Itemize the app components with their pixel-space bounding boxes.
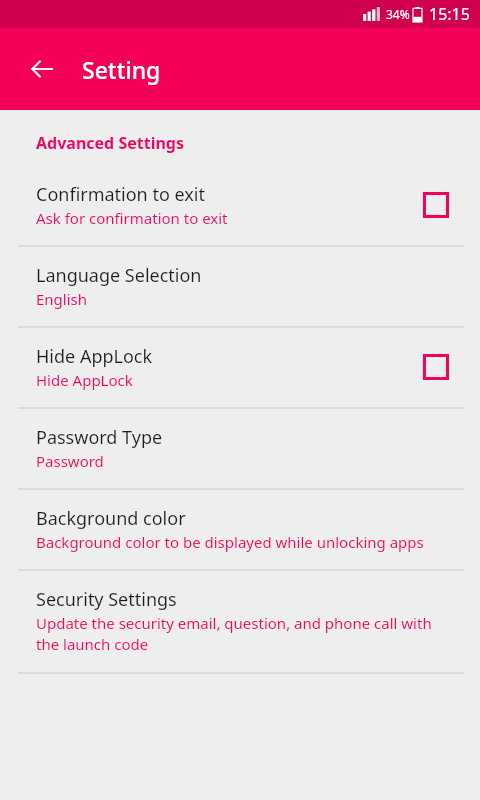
- staticText: English: [36, 289, 88, 309]
- staticText: Password Type: [36, 425, 163, 450]
- staticText: Hide AppLock: [36, 370, 133, 390]
- staticText: Confirmation to exit: [36, 182, 205, 207]
- staticText: Password: [36, 451, 104, 471]
- staticText: Security Settings: [36, 587, 177, 612]
- staticText: Advanced Settings: [36, 132, 184, 154]
- staticText: Language Selection: [36, 263, 202, 288]
- button[interactable]: Hide AppLock: [0, 328, 480, 407]
- button[interactable]: Toggle Hide AppLock: [416, 347, 456, 387]
- staticText: 15:15: [429, 3, 470, 25]
- button[interactable]: Confirmation to exit: [0, 166, 480, 245]
- button[interactable]: Language Selection: [0, 247, 480, 326]
- staticText: Ask for confirmation to exit: [36, 208, 228, 228]
- staticText: Setting: [82, 54, 161, 85]
- staticText: 34%: [386, 6, 410, 22]
- button[interactable]: Background color: [0, 490, 480, 569]
- staticText: Background color to be displayed while u…: [36, 532, 424, 552]
- staticText: Hide AppLock: [36, 344, 153, 369]
- staticText: Update the security email, question, and…: [36, 613, 456, 655]
- button[interactable]: Security Settings: [0, 571, 480, 672]
- button[interactable]: Toggle Confirmation to exit: [416, 185, 456, 225]
- button[interactable]: Password Type: [0, 409, 480, 488]
- staticText: Background color: [36, 506, 186, 531]
- button[interactable]: Back: [20, 47, 64, 91]
